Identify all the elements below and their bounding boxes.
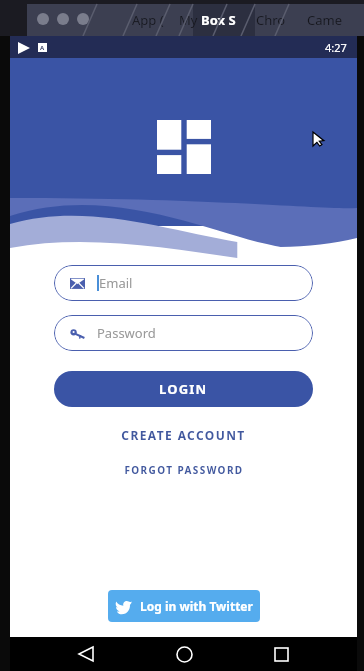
button[interactable]: Came — [307, 11, 342, 29]
button[interactable]: LOGIN — [54, 371, 313, 407]
button[interactable]: Home — [162, 637, 206, 671]
staticText: A — [40, 44, 45, 52]
staticText: Box S — [201, 11, 236, 29]
button[interactable]: CREATE ACCOUNT — [113, 425, 254, 445]
button[interactable]: Box S — [201, 11, 236, 29]
staticText: Log in with Twitter — [140, 598, 253, 614]
staticText: App ( — [132, 11, 164, 29]
button[interactable]: Log in with Twitter — [108, 590, 260, 622]
staticText: CREATE ACCOUNT — [121, 427, 246, 443]
button[interactable]: App ( — [132, 11, 164, 29]
button[interactable]: Password — [70, 315, 313, 351]
button[interactable]: Recents — [259, 637, 303, 671]
staticText: Email — [99, 274, 133, 292]
button[interactable]: FORGOT PASSWORD — [116, 461, 252, 479]
staticText: LOGIN — [159, 380, 208, 398]
staticText: Came — [307, 11, 342, 29]
staticText: My — [179, 11, 198, 29]
button[interactable]: Chro — [256, 11, 286, 29]
button[interactable]: Email — [70, 265, 313, 301]
staticText: FORGOT PASSWORD — [124, 463, 244, 477]
staticText: Password — [97, 324, 156, 342]
staticText: Chro — [256, 11, 286, 29]
button[interactable]: Back — [64, 637, 108, 671]
button[interactable]: My — [179, 11, 198, 29]
staticText: 4:27 — [325, 40, 347, 55]
